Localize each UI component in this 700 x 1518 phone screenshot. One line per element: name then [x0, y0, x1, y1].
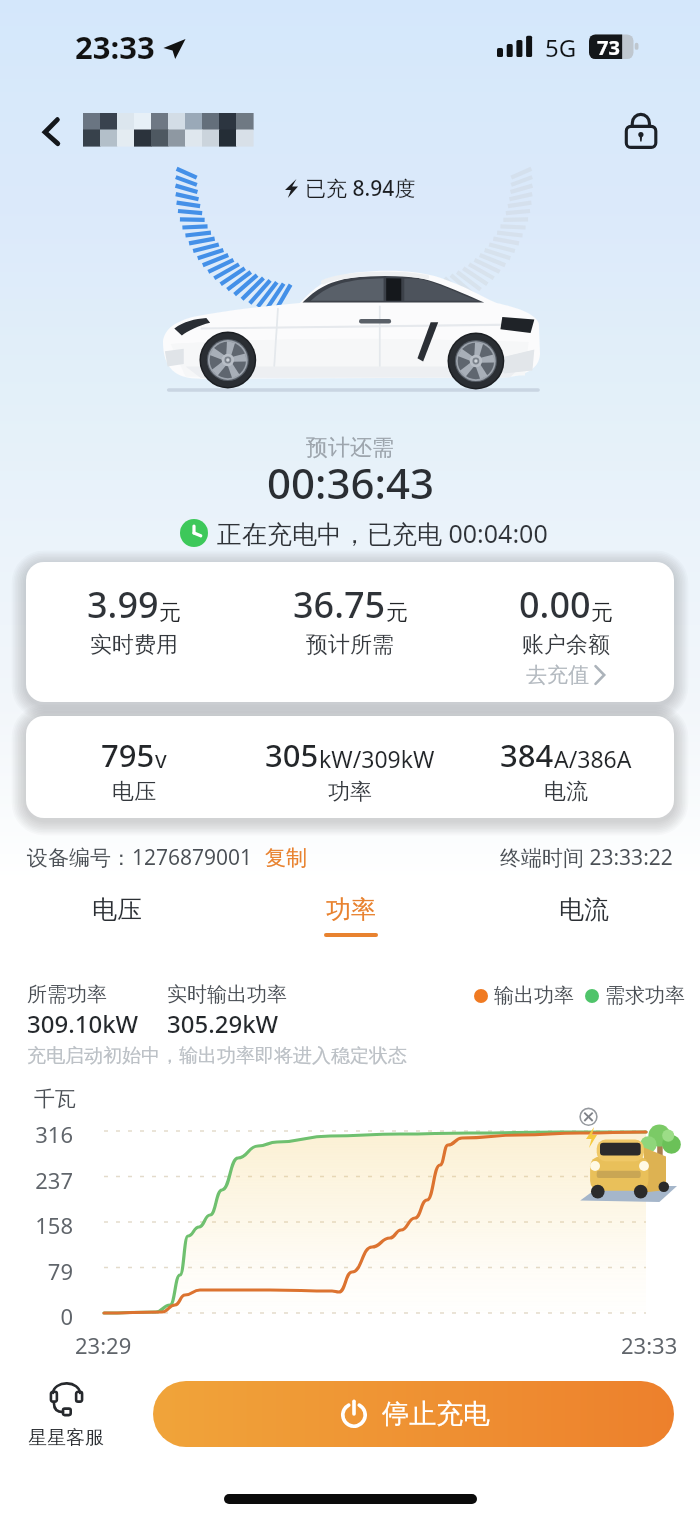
- staticText: 元: [386, 599, 408, 627]
- staticText: 237: [35, 1165, 73, 1195]
- staticText: 元: [159, 599, 181, 627]
- staticText: 复制: [265, 845, 307, 871]
- staticText: 158: [35, 1210, 73, 1240]
- staticText: 79: [47, 1256, 73, 1286]
- staticText: 73: [597, 34, 620, 60]
- button[interactable]: 去充值: [526, 662, 607, 688]
- button[interactable]: 停止充电: [153, 1381, 674, 1447]
- staticText: 千瓦: [34, 1086, 76, 1112]
- staticText: 去充值: [526, 662, 589, 688]
- staticText: 电流: [559, 894, 609, 925]
- staticText: kW/309kW: [319, 743, 435, 774]
- button[interactable]: Lock: [620, 108, 662, 150]
- staticText: 00:36:43: [267, 454, 434, 511]
- staticText: 305: [265, 734, 319, 776]
- button[interactable]: 电流: [467, 894, 700, 946]
- staticText: 所需功率: [27, 982, 107, 1007]
- staticText: 星星客服: [28, 1426, 104, 1450]
- button[interactable]: 复制: [265, 845, 307, 871]
- staticText: 输出功率: [494, 983, 574, 1008]
- staticText: 预计还需: [306, 434, 394, 462]
- staticText: 电压: [112, 778, 156, 806]
- staticText: 终端时间 23:33:22: [500, 843, 673, 872]
- staticText: 23:29: [75, 1330, 132, 1360]
- staticText: 功率: [326, 894, 376, 925]
- staticText: 账户余额: [522, 631, 610, 659]
- staticText: 316: [35, 1119, 73, 1149]
- staticText: 384: [500, 734, 554, 776]
- staticText: 309.10kW: [27, 1007, 139, 1040]
- staticText: 已充 8.94度: [305, 174, 416, 203]
- staticText: 0: [60, 1301, 73, 1331]
- staticText: 充电启动初始中，输出功率即将进入稳定状态: [27, 1044, 407, 1068]
- staticText: 0.00: [519, 580, 591, 629]
- button[interactable]: 电压: [0, 894, 234, 946]
- staticText: 电流: [544, 778, 588, 806]
- staticText: 795: [101, 734, 155, 776]
- staticText: 305.29kW: [167, 1007, 279, 1040]
- staticText: 实时输出功率: [167, 982, 287, 1007]
- staticText: 实时费用: [90, 631, 178, 659]
- staticText: 23:33: [75, 26, 155, 68]
- staticText: v: [155, 743, 167, 774]
- staticText: 36.75: [293, 580, 386, 629]
- button[interactable]: Back: [36, 110, 70, 144]
- staticText: 5G: [545, 31, 577, 64]
- staticText: 功率: [328, 778, 372, 806]
- staticText: 设备编号：1276879001: [27, 843, 253, 872]
- staticText: 停止充电: [382, 1397, 490, 1431]
- staticText: 3.99: [87, 580, 159, 629]
- button[interactable]: 星星客服: [14, 1382, 118, 1450]
- staticText: 正在充电中，已充电 00:04:00: [217, 516, 548, 550]
- staticText: A/386A: [554, 743, 632, 774]
- staticText: 预计所需: [306, 631, 394, 659]
- staticText: 23:33: [621, 1330, 678, 1360]
- staticText: 需求功率: [605, 983, 685, 1008]
- staticText: 元: [591, 599, 613, 627]
- button[interactable]: 功率: [234, 894, 467, 946]
- staticText: 电压: [92, 894, 142, 925]
